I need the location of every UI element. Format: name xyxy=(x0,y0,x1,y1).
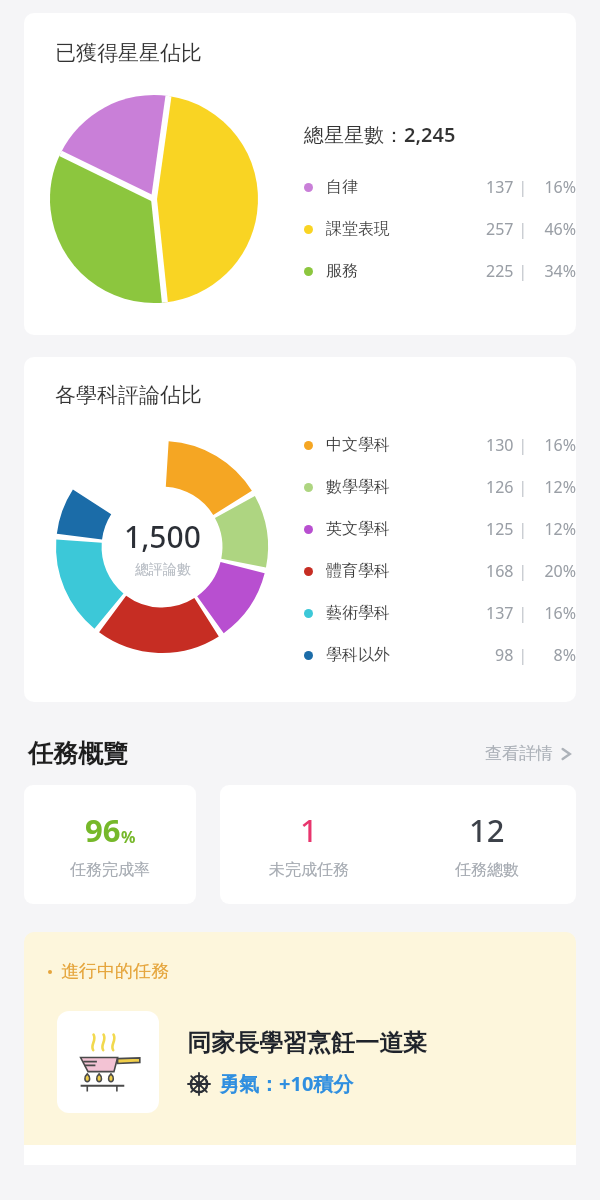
staticText: 查看詳情 xyxy=(485,743,553,764)
staticText: | xyxy=(514,218,532,240)
staticText: 學科以外 xyxy=(326,645,390,665)
staticText: 137 xyxy=(486,176,514,198)
staticText: % xyxy=(121,826,136,848)
staticText: 20% xyxy=(532,560,576,582)
staticText: 總評論數 xyxy=(135,561,191,579)
staticText: 任務概覽 xyxy=(28,738,128,769)
staticText: 各學科評論佔比 xyxy=(55,382,202,408)
staticText: 257 xyxy=(486,218,514,240)
staticText: | xyxy=(514,176,532,198)
staticText: 體育學科 xyxy=(326,561,390,581)
button[interactable]: 進行中的任務 xyxy=(24,932,576,1165)
other: View details xyxy=(560,748,572,760)
staticText: 總星星數：2,245 xyxy=(304,121,456,148)
staticText: 未完成任務 xyxy=(269,860,349,880)
staticText: 課堂表現 xyxy=(326,219,390,239)
button[interactable]: 96 xyxy=(24,785,196,904)
staticText: 12% xyxy=(532,518,576,540)
staticText: 130 xyxy=(486,434,514,456)
staticText: 8% xyxy=(532,644,576,666)
staticText: 英文學科 xyxy=(326,519,390,539)
button[interactable]: 已獲得星星佔比 xyxy=(24,13,576,335)
button[interactable]: 查看詳情 xyxy=(485,743,572,764)
staticText: 46% xyxy=(532,218,576,240)
staticText: 16% xyxy=(532,434,576,456)
staticText: 12 xyxy=(469,809,505,851)
staticText: | xyxy=(514,560,532,582)
staticText: | xyxy=(514,644,532,666)
staticText: 137 xyxy=(486,602,514,624)
staticText: | xyxy=(514,518,532,540)
other: Courage badge xyxy=(187,1072,211,1096)
staticText: 1,500 xyxy=(124,516,201,557)
staticText: 96 xyxy=(85,809,121,851)
staticText: | xyxy=(514,476,532,498)
staticText: 16% xyxy=(532,602,576,624)
staticText: 12% xyxy=(532,476,576,498)
staticText: | xyxy=(514,602,532,624)
staticText: 125 xyxy=(486,518,514,540)
staticText: 同家長學習烹飪一道菜 xyxy=(187,1028,427,1058)
staticText: 數學學科 xyxy=(326,477,390,497)
staticText: 168 xyxy=(486,560,514,582)
staticText: | xyxy=(514,434,532,456)
staticText: 1 xyxy=(300,809,318,851)
staticText: 任務完成率 xyxy=(70,860,150,880)
staticText: 服務 xyxy=(326,261,358,281)
staticText: 進行中的任務 xyxy=(61,960,169,983)
staticText: 自律 xyxy=(326,177,358,197)
staticText: 已獲得星星佔比 xyxy=(55,40,202,66)
staticText: 16% xyxy=(532,176,576,198)
staticText: 勇氣：+10積分 xyxy=(219,1070,354,1097)
staticText: 126 xyxy=(486,476,514,498)
staticText: 225 xyxy=(486,260,514,282)
button[interactable]: 1 xyxy=(220,785,576,904)
staticText: 任務總數 xyxy=(455,860,519,880)
staticText: 中文學科 xyxy=(326,435,390,455)
button[interactable]: 各學科評論佔比 xyxy=(24,357,576,702)
staticText: | xyxy=(514,260,532,282)
staticText: 藝術學科 xyxy=(326,603,390,623)
staticText: 34% xyxy=(532,260,576,282)
staticText: 98 xyxy=(495,644,514,666)
